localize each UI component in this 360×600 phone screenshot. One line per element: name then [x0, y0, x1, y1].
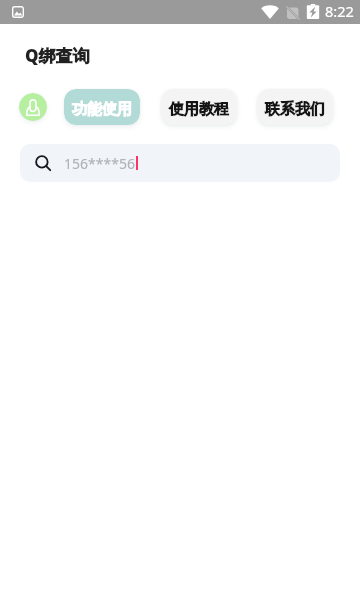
staticText: 使用教程	[169, 100, 229, 119]
button[interactable]: 使用教程	[161, 89, 237, 125]
staticText: 联系我们	[265, 100, 325, 119]
staticText: 功能使用	[72, 100, 132, 119]
button[interactable]: 156****56	[20, 144, 340, 182]
staticText: 8:22	[325, 1, 354, 21]
staticText: Q绑查询	[25, 44, 90, 67]
button[interactable]: Profile	[19, 93, 47, 121]
staticText: 156****56	[64, 154, 135, 173]
button[interactable]: 联系我们	[257, 89, 333, 125]
button[interactable]: 功能使用	[64, 89, 140, 125]
